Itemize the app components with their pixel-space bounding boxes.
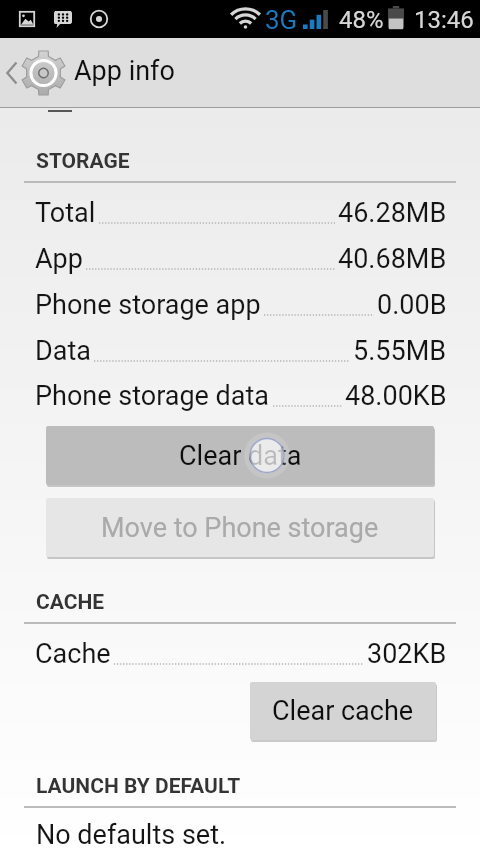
staticText: STORAGE bbox=[36, 149, 130, 174]
staticText: Total bbox=[35, 197, 96, 229]
button[interactable]: Cache bbox=[0, 632, 480, 676]
staticText: Clear cache bbox=[272, 695, 414, 727]
button[interactable]: Navigate up, App info bbox=[0, 38, 480, 108]
staticText: App info bbox=[74, 55, 175, 87]
staticText: 0.00B bbox=[377, 289, 447, 321]
staticText: 40.68MB bbox=[338, 243, 447, 275]
button[interactable]: Phone storage data bbox=[0, 374, 480, 418]
button[interactable]: Clear data bbox=[46, 426, 434, 485]
staticText: Phone storage data bbox=[35, 380, 270, 412]
button[interactable]: Data bbox=[0, 329, 480, 373]
staticText: Cache bbox=[35, 638, 111, 670]
staticText: No defaults set. bbox=[36, 819, 227, 851]
button[interactable]: Clear cache bbox=[250, 682, 436, 740]
staticText: App bbox=[35, 243, 83, 275]
staticText: LAUNCH BY DEFAULT bbox=[36, 774, 241, 799]
button[interactable]: Total bbox=[0, 191, 480, 235]
staticText: Data bbox=[35, 335, 91, 367]
staticText: 48% bbox=[339, 6, 384, 34]
staticText: Phone storage app bbox=[35, 289, 261, 321]
staticText: 302KB bbox=[367, 638, 447, 670]
button[interactable]: Move to Phone storage bbox=[46, 498, 434, 557]
button[interactable]: App bbox=[0, 237, 480, 281]
staticText: 3G bbox=[265, 5, 298, 35]
staticText: 5.55MB bbox=[353, 335, 447, 367]
staticText: Move to Phone storage bbox=[101, 512, 379, 544]
staticText: CACHE bbox=[36, 590, 105, 615]
staticText: Clear data bbox=[179, 440, 302, 472]
staticText: 13:46 bbox=[414, 6, 474, 34]
staticText: 48.00KB bbox=[345, 380, 447, 412]
button[interactable]: Phone storage app bbox=[0, 283, 480, 327]
staticText: 46.28MB bbox=[338, 197, 447, 229]
